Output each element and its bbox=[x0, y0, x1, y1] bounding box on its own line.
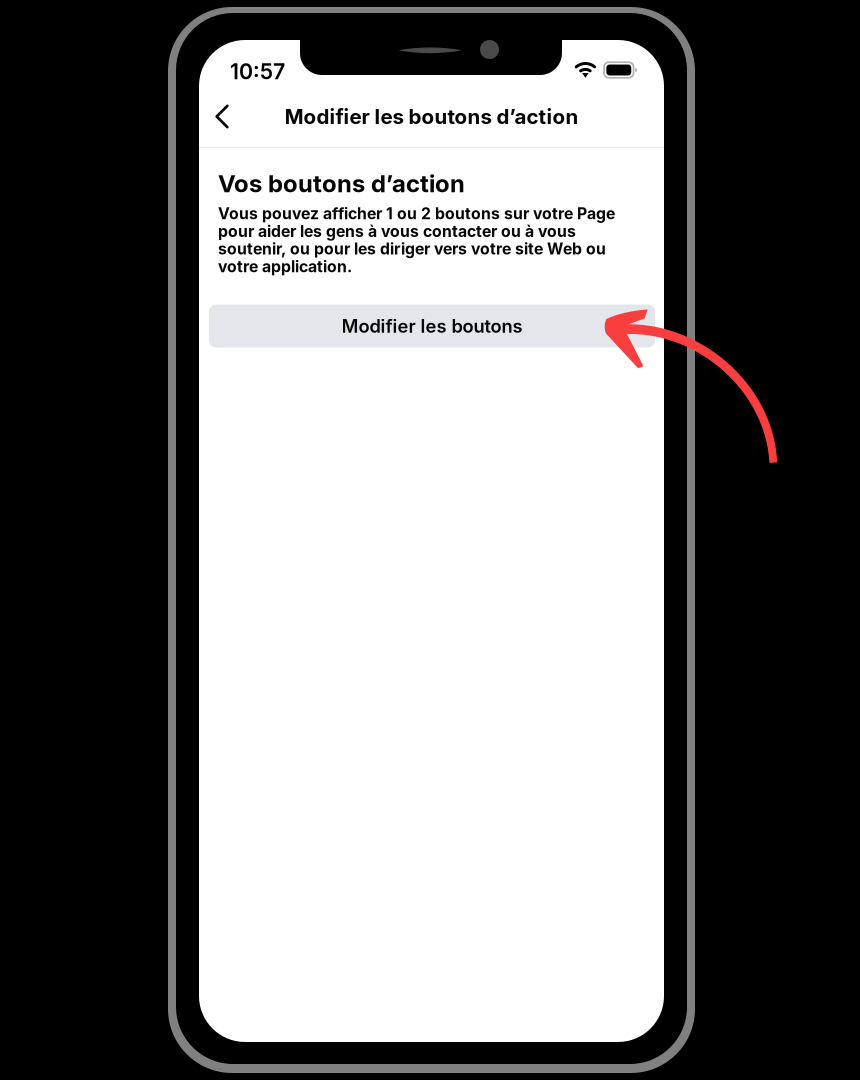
staticText: 10:57 bbox=[230, 59, 285, 84]
staticText: Modifier les boutons bbox=[341, 315, 522, 337]
button[interactable]: Retour bbox=[202, 94, 242, 138]
button[interactable]: Modifier les boutons bbox=[209, 304, 655, 347]
staticText: Vos boutons d’action bbox=[218, 169, 465, 198]
staticText: Vous pouvez afficher 1 ou 2 boutons sur … bbox=[218, 204, 615, 276]
staticText: Modifier les boutons d’action bbox=[284, 104, 578, 129]
